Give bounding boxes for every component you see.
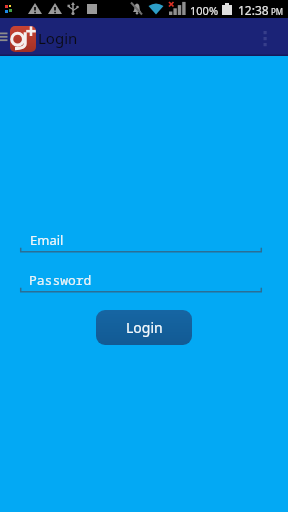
button[interactable]: Login [96,310,192,345]
staticText: PM [271,6,284,17]
button[interactable]: Password [20,268,262,293]
staticText: 12:38 [238,2,269,18]
staticText: Login [38,28,78,48]
staticText: Login [126,318,163,337]
button[interactable] [254,22,284,52]
button[interactable] [0,24,9,50]
staticText: 100% [190,3,219,18]
button[interactable]: Email [20,226,262,253]
staticText: Email [30,231,64,249]
staticText: Password [29,271,92,289]
button[interactable] [10,26,36,52]
